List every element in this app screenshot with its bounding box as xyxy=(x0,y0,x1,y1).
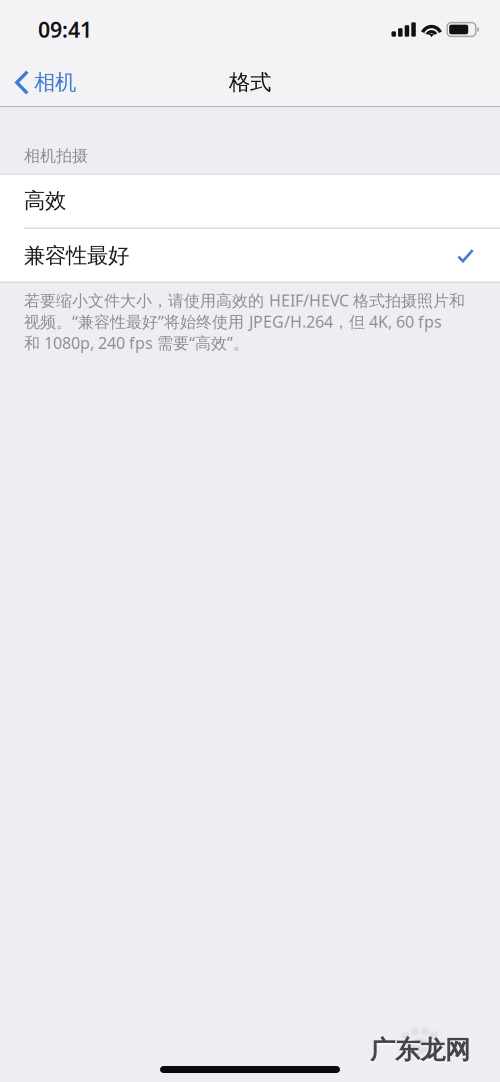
staticText: 高效 xyxy=(24,188,66,214)
staticText: 兼容性最好 xyxy=(24,242,129,269)
staticText: 广东龙网 xyxy=(370,1036,470,1067)
staticText: 相机 xyxy=(34,69,76,96)
staticText: 相机拍摄 xyxy=(24,146,88,166)
staticText: 09:41 xyxy=(38,15,92,44)
staticText: 视频。“兼容性最好”将始终使用 JPEG/H.264，但 4K, 60 fps xyxy=(24,311,442,332)
button[interactable]: 相机 xyxy=(0,59,86,105)
button[interactable]: 兼容性最好 xyxy=(0,229,500,283)
staticText: 广东龙网 xyxy=(370,1034,470,1065)
staticText: 和 1080p, 240 fps 需要“高效”。 xyxy=(24,332,249,353)
button[interactable]: 高效 xyxy=(0,174,500,228)
staticText: 格式 xyxy=(229,69,271,96)
staticText: 若要缩小文件大小，请使用高效的 HEIF/HEVC 格式拍摄照片和 xyxy=(24,290,465,311)
